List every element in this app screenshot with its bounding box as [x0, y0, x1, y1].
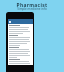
staticText: Pharmacist Summarized — [0, 2, 64, 9]
button[interactable]: Menu — [8, 19, 33, 24]
staticText: Simple medicine info — [0, 7, 64, 11]
